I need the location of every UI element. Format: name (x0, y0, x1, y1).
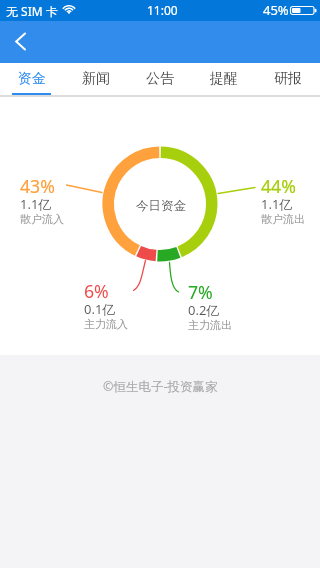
staticText: 11:00 (147, 2, 178, 18)
staticText: 今日资金 (136, 198, 186, 214)
staticText: 7% (188, 280, 213, 304)
staticText: ©恒生电子-投资赢家 (103, 378, 218, 395)
staticText: 提醒 (210, 70, 238, 88)
staticText: 45% (263, 1, 289, 19)
staticText: 0.2亿 (188, 301, 220, 319)
button[interactable]: 提醒 (192, 63, 256, 97)
staticText: 1.1亿 (261, 195, 293, 213)
staticText: 公告 (146, 70, 174, 88)
staticText: 散户流出 (261, 212, 305, 226)
staticText: 1.1亿 (20, 195, 52, 213)
button[interactable]: 公告 (128, 63, 192, 97)
staticText: 资金 (18, 70, 46, 88)
staticText: 43% (20, 174, 55, 198)
staticText: 0.1亿 (84, 300, 116, 318)
staticText: 无 SIM 卡 (6, 3, 58, 19)
button[interactable]: 研报 (256, 63, 320, 97)
button[interactable]: Back (0, 21, 42, 63)
staticText: 散户流入 (20, 212, 64, 226)
staticText: 主力流入 (84, 317, 128, 331)
staticText: 新闻 (82, 70, 110, 88)
button[interactable]: 新闻 (64, 63, 128, 97)
button[interactable]: 资金 (0, 63, 64, 97)
staticText: 44% (261, 174, 296, 198)
staticText: 研报 (274, 70, 302, 88)
staticText: 6% (84, 279, 109, 303)
staticText: 主力流出 (188, 318, 232, 332)
